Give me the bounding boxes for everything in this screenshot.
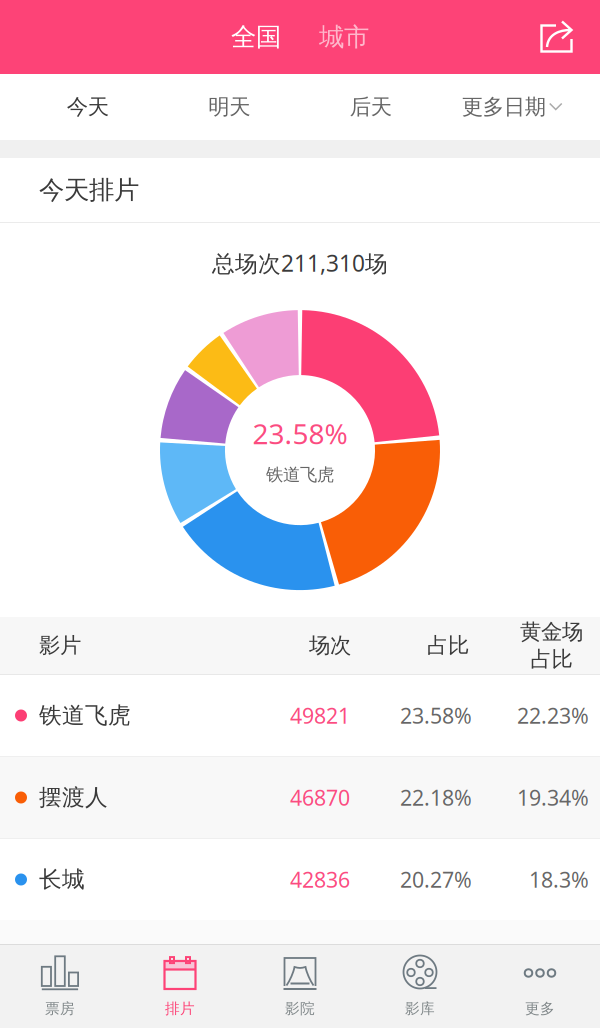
button[interactable]: 票房	[0, 945, 120, 1028]
staticText: 黄金场	[520, 619, 583, 645]
staticText: 今天	[67, 94, 109, 120]
staticText: 22.23%	[517, 701, 589, 730]
staticText: 影片	[39, 632, 81, 659]
staticText: 占比	[530, 646, 572, 672]
staticText: 影库	[405, 999, 435, 1017]
staticText: 18.3%	[529, 865, 589, 894]
staticText: 总场次211,310场	[212, 248, 388, 278]
staticText: 22.18%	[400, 783, 472, 812]
button[interactable]: 摆渡人	[0, 757, 600, 838]
staticText: 排片	[165, 999, 195, 1017]
staticText: 23.58%	[400, 701, 472, 730]
button[interactable]: 全国	[212, 0, 300, 74]
button[interactable]: 排片	[120, 945, 240, 1028]
staticText: 今天排片	[39, 174, 139, 205]
staticText: 更多	[525, 999, 555, 1017]
staticText: 影院	[285, 999, 315, 1017]
staticText: 49821	[290, 701, 350, 730]
staticText: 明天	[208, 94, 250, 120]
button[interactable]: 城市	[300, 0, 388, 74]
button[interactable]: 分享	[540, 0, 600, 74]
staticText: 票房	[45, 999, 75, 1017]
staticText: 场次	[309, 632, 351, 659]
button[interactable]: 今天	[17, 74, 158, 140]
button[interactable]: 后天	[300, 74, 441, 140]
staticText: 铁道飞虎	[266, 464, 334, 485]
button[interactable]: 铁道飞虎	[0, 675, 600, 756]
button[interactable]: 长城	[0, 839, 600, 920]
button[interactable]: 明天	[158, 74, 300, 140]
button[interactable]: 影院	[240, 945, 360, 1028]
staticText: 42836	[290, 865, 350, 894]
button[interactable]: 影库	[360, 945, 480, 1028]
button[interactable]: 更多	[480, 945, 600, 1028]
staticText: 全国	[231, 21, 281, 52]
staticText: 城市	[319, 21, 369, 52]
staticText: 占比	[427, 632, 469, 659]
staticText: 46870	[290, 783, 350, 812]
staticText: 23.58%	[252, 415, 347, 452]
button[interactable]: 更多日期	[441, 74, 583, 140]
staticText: 后天	[350, 94, 392, 120]
staticText: 19.34%	[517, 783, 589, 812]
staticText: 20.27%	[400, 865, 472, 894]
staticText: 摆渡人	[39, 784, 108, 811]
staticText: 铁道飞虎	[39, 702, 131, 729]
staticText: 更多日期	[462, 94, 546, 120]
staticText: 长城	[39, 866, 85, 893]
